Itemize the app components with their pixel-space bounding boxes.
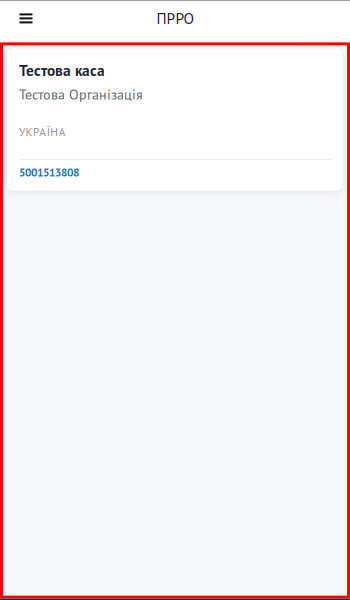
staticText: Тестова каса — [19, 60, 105, 80]
button[interactable]: Menu — [9, 1, 43, 35]
staticText: УКРАЇНА — [19, 124, 66, 139]
staticText: 5001513808 — [19, 165, 79, 180]
staticText: ПРРО — [156, 8, 193, 28]
staticText: Тестова Організація — [19, 85, 143, 103]
